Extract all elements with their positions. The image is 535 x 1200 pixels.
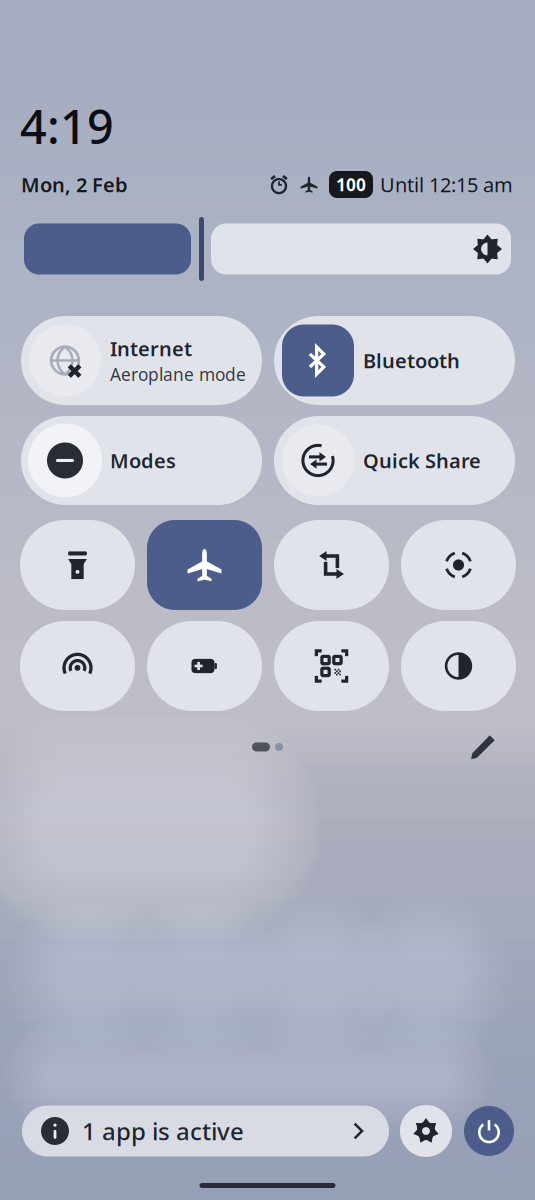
- staticText: Mon, 2 Feb: [21, 171, 128, 198]
- button[interactable]: Aeroplane mode: [147, 520, 262, 610]
- button[interactable]: Hotspot: [20, 621, 135, 711]
- button[interactable]: Brightness: [211, 223, 511, 274]
- button[interactable]: Battery saver: [147, 621, 262, 711]
- button[interactable]: Modes: [21, 416, 262, 505]
- button[interactable]: Screen record: [401, 520, 516, 610]
- button[interactable]: Internet: [21, 316, 262, 405]
- button[interactable]: Settings: [400, 1105, 452, 1157]
- staticText: Quick Share: [363, 447, 481, 474]
- button[interactable]: Power: [464, 1106, 514, 1156]
- staticText: 1 app is active: [82, 1115, 244, 1147]
- staticText: 4:19: [20, 95, 114, 157]
- button[interactable]: Edit: [463, 727, 503, 767]
- button[interactable]: Auto-rotate: [274, 520, 389, 610]
- staticText: Internet: [110, 335, 192, 362]
- staticText: Until 12:15 am: [380, 171, 513, 198]
- staticText: Modes: [110, 447, 176, 474]
- button[interactable]: Scan QR code: [274, 621, 389, 711]
- staticText: Aeroplane mode: [110, 363, 246, 386]
- staticText: Bluetooth: [363, 347, 460, 374]
- button[interactable]: Volume: [24, 223, 191, 274]
- button[interactable]: Flashlight: [20, 520, 135, 610]
- button[interactable]: Bluetooth: [274, 316, 515, 405]
- button[interactable]: Contrast: [401, 621, 516, 711]
- button[interactable]: 1 app is active: [22, 1105, 389, 1156]
- staticText: 100: [336, 173, 366, 196]
- button[interactable]: Quick Share: [274, 416, 515, 505]
